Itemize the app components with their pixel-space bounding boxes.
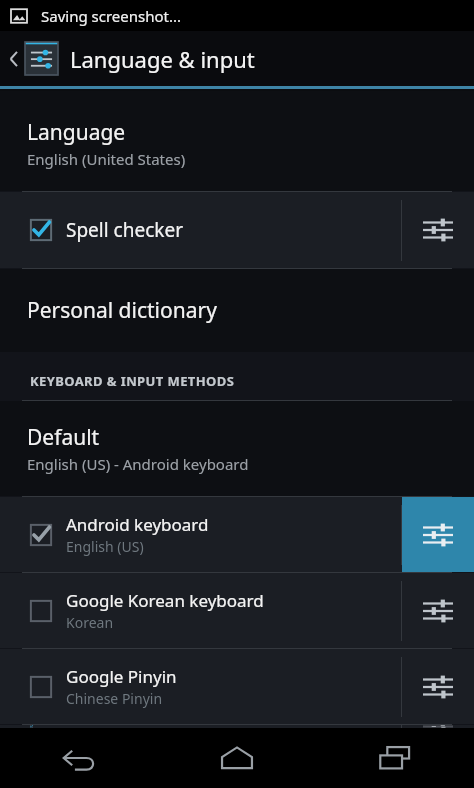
- button[interactable]: Recent apps: [316, 728, 474, 788]
- staticText: Android keyboard: [66, 513, 209, 536]
- staticText: Google Korean keyboard: [66, 589, 264, 612]
- staticText: Spell checker: [66, 217, 183, 243]
- staticText: Language & input: [70, 44, 255, 74]
- button[interactable]: Default: [0, 401, 474, 496]
- button[interactable]: Google Pinyin: [0, 649, 401, 724]
- staticText: Chinese Pinyin: [66, 689, 163, 708]
- button[interactable]: Android keyboard: [0, 497, 401, 572]
- staticText: English (United States): [27, 149, 186, 169]
- button[interactable]: Google Korean keyboard: [0, 573, 401, 648]
- button[interactable]: Settings for Google Pinyin: [402, 649, 474, 724]
- button[interactable]: Personal dictionary: [0, 269, 474, 352]
- button[interactable]: Home: [158, 728, 316, 788]
- staticText: Default: [27, 423, 100, 452]
- button[interactable]: Settings for Google Korean keyboard: [402, 573, 474, 648]
- staticText: KEYBOARD & INPUT METHODS: [30, 372, 235, 390]
- staticText: English (US) - Android keyboard: [27, 454, 249, 474]
- button[interactable]: Up, Language & input: [0, 31, 474, 86]
- button[interactable]: Google voice typing: [0, 725, 401, 728]
- staticText: English (US): [66, 537, 144, 556]
- button[interactable]: Language: [0, 91, 474, 191]
- button[interactable]: Settings for Android keyboard: [402, 497, 474, 572]
- button[interactable]: Spell checker: [0, 192, 401, 268]
- staticText: Google Pinyin: [66, 665, 177, 688]
- staticText: Saving screenshot...: [41, 6, 182, 26]
- button[interactable]: Settings for Spell checker: [402, 192, 474, 268]
- staticText: Korean: [66, 613, 114, 632]
- staticText: Personal dictionary: [27, 296, 217, 325]
- staticText: Language: [27, 118, 126, 147]
- button[interactable]: Back: [0, 728, 158, 788]
- button[interactable]: Settings for Google voice typing: [402, 725, 474, 728]
